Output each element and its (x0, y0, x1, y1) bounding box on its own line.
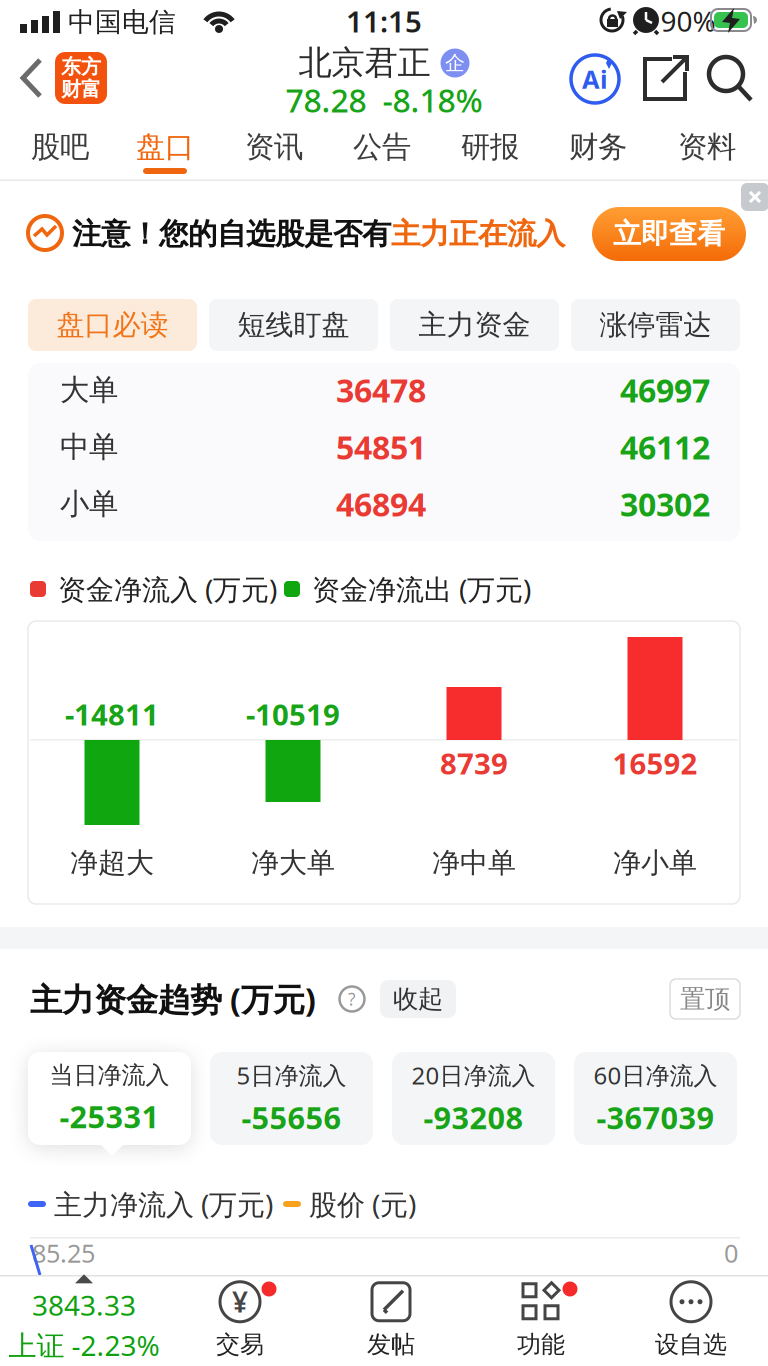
staticText: -25331 (59, 1096, 159, 1137)
staticText: 设自选 (655, 1330, 727, 1359)
staticText: 60日净流入 (593, 1059, 717, 1091)
staticText: 功能 (517, 1330, 565, 1359)
staticText: 8739 (440, 743, 508, 782)
button[interactable]: 主力资金 (390, 299, 559, 351)
staticText: Ai (582, 62, 608, 96)
staticText: 资金净流出 (万元) (312, 570, 531, 608)
button[interactable]: 当日净流入 (28, 1052, 191, 1145)
button[interactable]: 东方财富 (55, 52, 107, 104)
staticText: -55656 (241, 1097, 341, 1138)
staticText: 85.25 (32, 1236, 95, 1270)
staticText: 发帖 (367, 1330, 415, 1359)
staticText: -8.18% (382, 79, 482, 121)
staticText: -367039 (596, 1097, 714, 1138)
staticText: 股吧 (31, 129, 89, 165)
staticText: 当日净流入 (49, 1060, 169, 1090)
button[interactable]: 置顶 (670, 979, 740, 1019)
staticText: 财富 (61, 77, 101, 102)
button[interactable]: 3843.33 (8, 1274, 159, 1364)
button[interactable]: 60日净流入 (574, 1052, 737, 1145)
staticText: -10519 (246, 694, 340, 733)
button[interactable]: Close (741, 183, 768, 211)
staticText: 立即查看 (613, 217, 725, 251)
staticText: 净小单 (613, 846, 697, 880)
staticText: 20日净流入 (411, 1059, 535, 1091)
staticText: 置顶 (680, 983, 730, 1014)
button[interactable]: 研报 (440, 119, 540, 175)
staticText: 46997 (620, 369, 710, 411)
staticText: 3843.33 (32, 1286, 136, 1323)
staticText: 11:15 (346, 1, 422, 40)
staticText: 盘口必读 (56, 308, 168, 342)
staticText: 企 (445, 51, 465, 75)
staticText: -93208 (423, 1097, 523, 1138)
staticText: 5日净流入 (236, 1059, 346, 1091)
staticText: 16592 (612, 743, 697, 782)
button[interactable]: 公告 (332, 119, 432, 175)
button[interactable]: 短线盯盘 (209, 299, 378, 351)
staticText: 研报 (461, 129, 519, 165)
staticText: 收起 (393, 983, 443, 1014)
staticText: 大单 (60, 372, 118, 408)
button[interactable]: Search (698, 48, 760, 110)
button[interactable]: Share (632, 48, 698, 110)
staticText: 主力净流入 (万元) (54, 1185, 273, 1223)
button[interactable]: 资料 (657, 119, 757, 175)
button[interactable]: 盘口 (115, 119, 215, 175)
button[interactable]: 收起 (380, 980, 456, 1018)
staticText: 净大单 (251, 846, 335, 880)
staticText: 36478 (336, 369, 426, 411)
staticText: 46894 (336, 483, 426, 525)
staticText: 90% (660, 2, 715, 40)
staticText: 公告 (353, 129, 411, 165)
staticText: 54851 (336, 426, 426, 468)
staticText: 净超大 (70, 846, 154, 880)
staticText: 净中单 (432, 846, 516, 880)
staticText: 交易 (216, 1330, 264, 1359)
staticText: -14811 (65, 694, 159, 733)
button[interactable]: Back (0, 44, 60, 112)
button[interactable]: 发帖 (367, 1281, 415, 1359)
button[interactable]: 20日净流入 (392, 1052, 555, 1145)
staticText: 30302 (620, 483, 710, 525)
staticText: ¥ (232, 1283, 248, 1320)
staticText: 0 (724, 1236, 738, 1270)
staticText: 主力资金趋势 (万元) (30, 978, 316, 1020)
staticText: 小单 (60, 486, 118, 522)
staticText: 78.28 (285, 79, 366, 121)
staticText: 盘口 (136, 129, 194, 165)
staticText: 股价 (元) (309, 1185, 416, 1223)
button[interactable]: 股吧 (10, 119, 110, 175)
staticText: 资讯 (245, 129, 303, 165)
staticText: 财务 (569, 129, 627, 165)
staticText: 中国电信 (68, 6, 176, 38)
button[interactable]: 5日净流入 (210, 1052, 373, 1145)
button[interactable]: 立即查看 (592, 207, 746, 261)
button[interactable]: 盘口必读 (28, 299, 197, 351)
button[interactable]: 资讯 (224, 119, 324, 175)
staticText: 北京君正 (298, 42, 430, 83)
button[interactable]: 财务 (548, 119, 648, 175)
staticText: 主力资金 (418, 308, 530, 342)
staticText: 资金净流入 (万元) (58, 570, 277, 608)
staticText: 上证 -2.23% (8, 1326, 159, 1364)
staticText: ? (348, 987, 356, 1010)
button[interactable]: 功能 (517, 1281, 565, 1359)
button[interactable]: 涨停雷达 (571, 299, 740, 351)
staticText: 中单 (60, 429, 118, 465)
staticText: 东方 (61, 54, 101, 79)
button[interactable]: 交易 (216, 1281, 264, 1359)
staticText: 短线盯盘 (237, 308, 349, 342)
staticText: 涨停雷达 (599, 308, 711, 342)
button[interactable]: 设自选 (655, 1281, 727, 1359)
staticText: 46112 (620, 426, 710, 468)
staticText: 主力正在流入 (391, 216, 565, 252)
staticText: 注意！您的自选股是否有 (72, 216, 391, 252)
staticText: 资料 (678, 129, 736, 165)
button[interactable]: Ai (569, 53, 621, 105)
